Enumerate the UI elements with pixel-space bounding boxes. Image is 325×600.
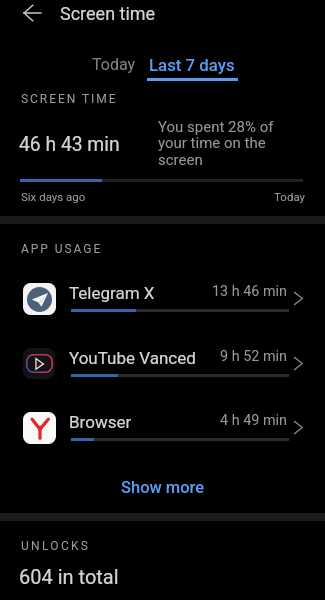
staticText: Screen time [60, 3, 156, 24]
staticText: Today [229, 190, 305, 203]
staticText: Show more [121, 478, 205, 497]
staticText: 13 h 46 min [180, 283, 287, 300]
button[interactable]: Last 7 days [145, 50, 239, 81]
staticText: 9 h 52 min [180, 348, 287, 365]
staticText: SCREEN TIME [21, 92, 118, 106]
button[interactable]: Today [83, 50, 144, 78]
button[interactable]: Telegram X [0, 272, 325, 327]
staticText: You spent 28% of your time on the screen [158, 118, 298, 169]
staticText: Today [92, 55, 136, 74]
staticText: 4 h 49 min [180, 412, 287, 429]
staticText: Last 7 days [149, 55, 235, 75]
button[interactable]: Show more [110, 470, 215, 504]
staticText: YouTube Vanced [69, 348, 196, 368]
button[interactable]: YouTube Vanced [0, 337, 325, 392]
staticText: 46 h 43 min [19, 133, 120, 156]
staticText: Browser [69, 412, 132, 432]
staticText: 604 in total [19, 565, 119, 588]
button[interactable]: Browser [0, 401, 325, 456]
staticText: APP USAGE [21, 242, 103, 256]
button[interactable]: Back [21, 0, 46, 25]
staticText: Telegram X [69, 283, 155, 303]
staticText: UNLOCKS [21, 539, 91, 553]
staticText: Six days ago [21, 190, 86, 203]
